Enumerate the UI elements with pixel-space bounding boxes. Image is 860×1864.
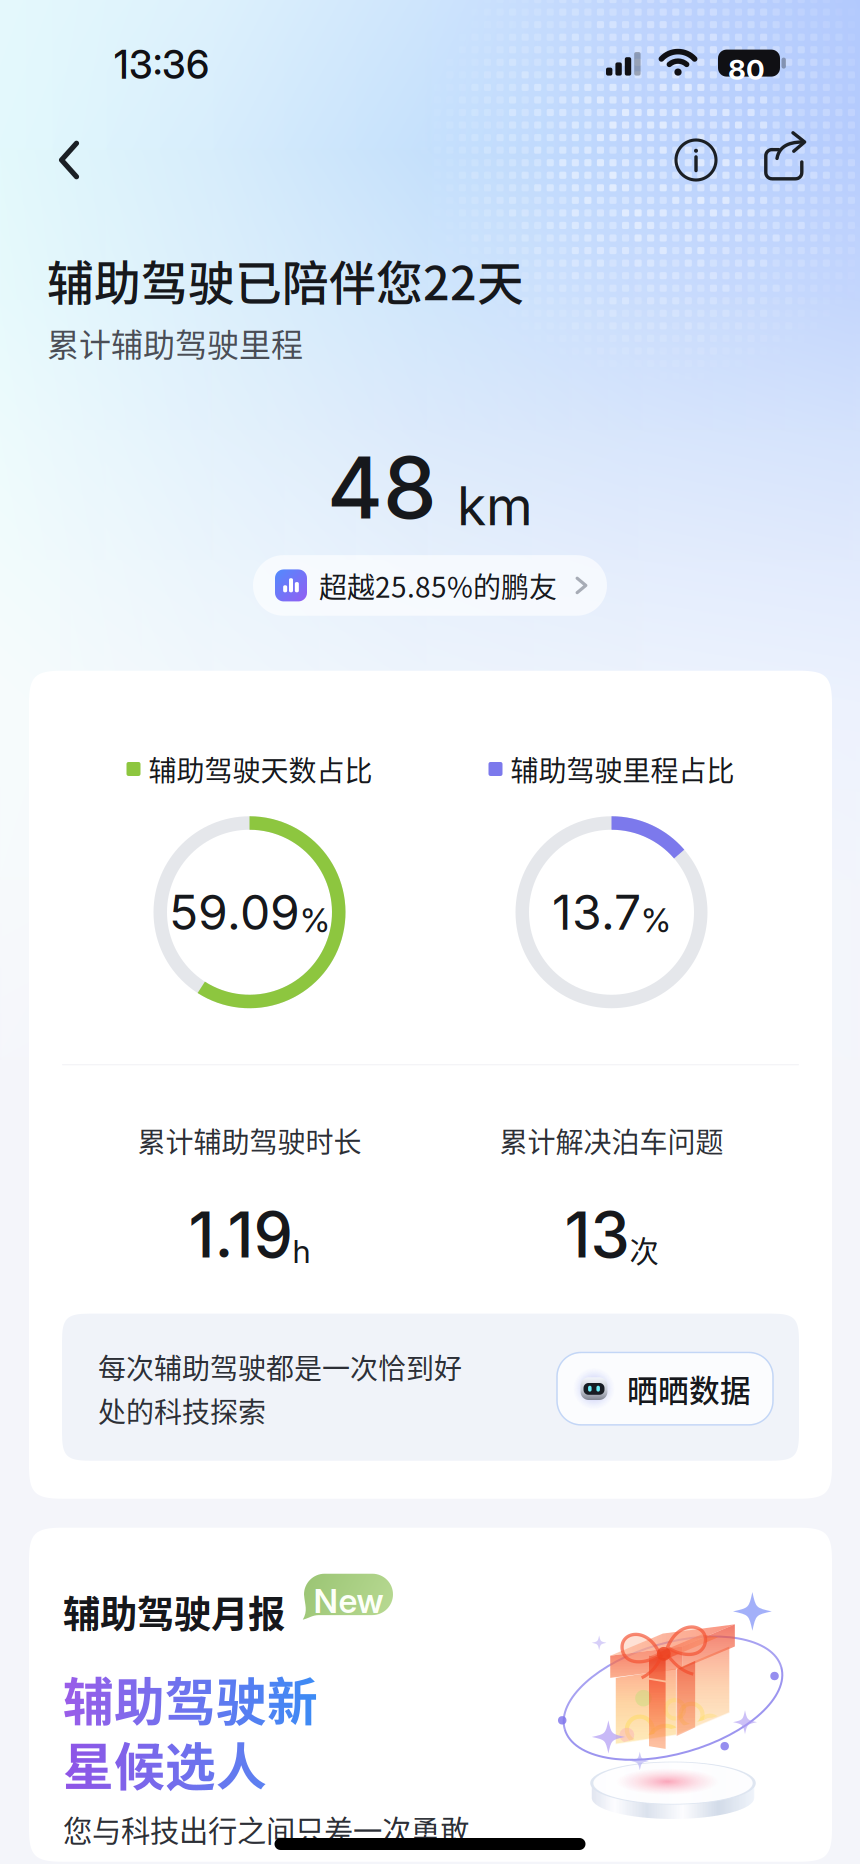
staticText: h — [292, 1232, 310, 1271]
staticText: % — [300, 900, 330, 940]
staticText: 每次辅助驾驶都是一次恰到好 — [98, 1347, 462, 1387]
staticText: 59.09 — [169, 883, 300, 941]
staticText: 累计解决泊车问题 — [499, 1120, 723, 1161]
staticText: 晒晒数据 — [627, 1366, 751, 1411]
staticText: 累计辅助驾驶里程 — [47, 320, 303, 366]
button[interactable]: Share — [749, 124, 821, 196]
staticText: 您与科技出行之间只差一次勇敢 — [63, 1808, 469, 1850]
staticText: 1.19 — [188, 1197, 292, 1273]
staticText: 13.7 — [552, 883, 641, 941]
staticText: 13:36 — [114, 41, 209, 88]
staticText: 辅助驾驶已陪伴您22天 — [47, 246, 524, 314]
staticText: 80 — [728, 53, 765, 86]
staticText: km — [457, 474, 533, 538]
staticText: % — [641, 900, 671, 940]
staticText: 辅助驾驶天数占比 — [148, 749, 372, 789]
staticText: 累计辅助驾驶时长 — [137, 1120, 361, 1161]
staticText: 辅助驾驶里程占比 — [510, 749, 734, 789]
staticText: New — [313, 1581, 383, 1621]
staticText: 13 — [564, 1197, 629, 1273]
button[interactable]: 晒晒数据 — [557, 1352, 773, 1425]
staticText: 48 — [327, 436, 437, 539]
button[interactable]: 超越25.85%的鹏友 — [253, 555, 607, 616]
button[interactable]: Back — [33, 124, 105, 196]
staticText: 辅助驾驶月报 — [63, 1585, 285, 1639]
button[interactable]: Info — [660, 124, 749, 196]
staticText: 次 — [629, 1228, 658, 1271]
staticText: 处的科技探索 — [98, 1390, 266, 1431]
staticText: 超越25.85%的鹏友 — [319, 565, 557, 606]
